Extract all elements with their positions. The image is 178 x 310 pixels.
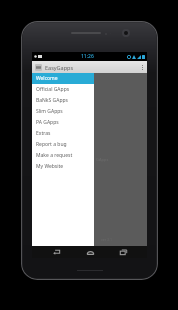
button[interactable]: Back <box>47 246 65 258</box>
staticText: Welcome <box>36 75 58 82</box>
staticText: EasyGapps <box>45 64 74 71</box>
button[interactable]: BaNkS GApps <box>32 95 94 106</box>
staticText: Report a bug <box>36 141 67 148</box>
staticText: Slim GApps <box>36 108 63 115</box>
button[interactable]: Extras <box>32 128 94 139</box>
button[interactable]: Report a bug <box>32 139 94 150</box>
button[interactable]: More options <box>138 61 147 73</box>
button[interactable]: My Website <box>32 161 94 172</box>
button[interactable]: Open navigation drawer <box>35 64 42 71</box>
button[interactable]: PA GApps <box>32 117 94 128</box>
staticText: BaNkS GApps <box>36 97 68 104</box>
staticText: Extras <box>36 130 51 137</box>
staticText: My Website <box>36 163 64 170</box>
button[interactable]: Make a request <box>32 150 94 161</box>
staticText: PA GApps <box>36 119 59 126</box>
button[interactable]: Home <box>81 246 99 258</box>
staticText: Make a request <box>36 152 73 159</box>
staticText: 11:26 <box>81 53 94 60</box>
button[interactable]: Slim GApps <box>32 106 94 117</box>
button[interactable]: Recent apps <box>114 246 132 258</box>
staticText: GApps <box>96 157 109 162</box>
staticText: Official GApps <box>36 86 70 93</box>
button[interactable]: Official GApps <box>32 84 94 95</box>
button[interactable]: Welcome <box>32 73 94 84</box>
